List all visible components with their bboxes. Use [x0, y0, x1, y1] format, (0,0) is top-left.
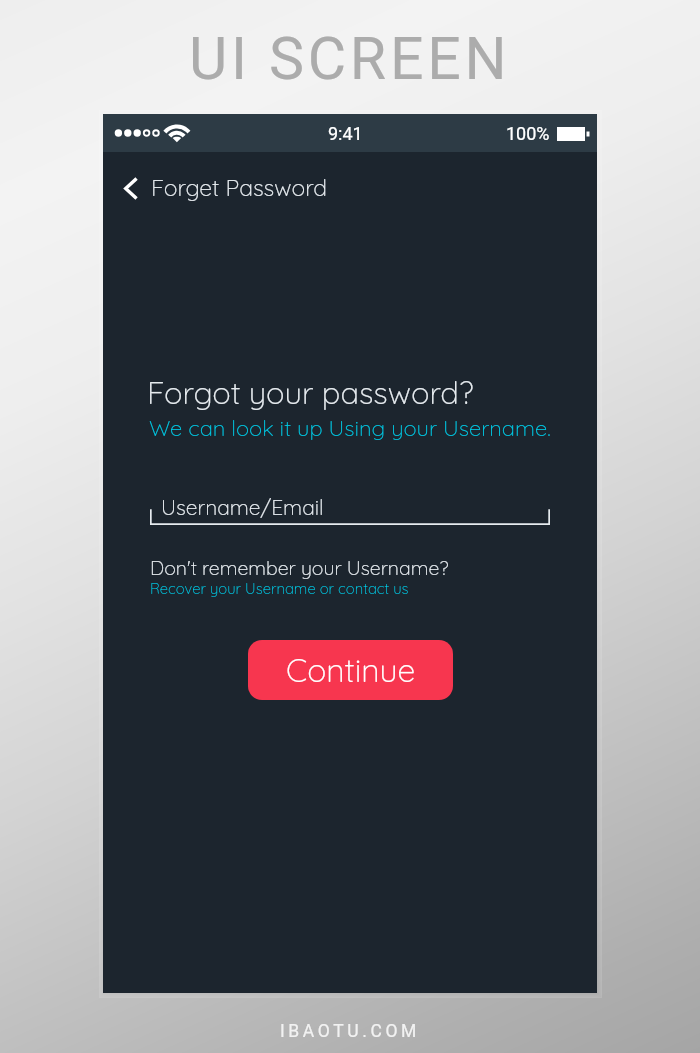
other: Back [124, 178, 137, 199]
button[interactable]: Back [103, 166, 339, 211]
staticText: Forget Password [151, 173, 327, 202]
button[interactable]: Continue [248, 640, 453, 700]
staticText: Forgot your password? [147, 373, 474, 412]
staticText: UI SCREEN [189, 24, 511, 93]
staticText: 9:41 [328, 123, 363, 144]
staticText: Don't remember your Username? [150, 555, 449, 579]
staticText: Continue [286, 650, 416, 690]
staticText: IBAOTU.COM [280, 1021, 420, 1042]
staticText: Username/Email [161, 494, 324, 520]
button[interactable]: Username/Email [150, 494, 550, 525]
staticText: We can look it up Using your Username. [149, 414, 551, 442]
staticText: 100% [506, 123, 550, 144]
button[interactable]: Recover your Username or contact us [150, 579, 409, 598]
